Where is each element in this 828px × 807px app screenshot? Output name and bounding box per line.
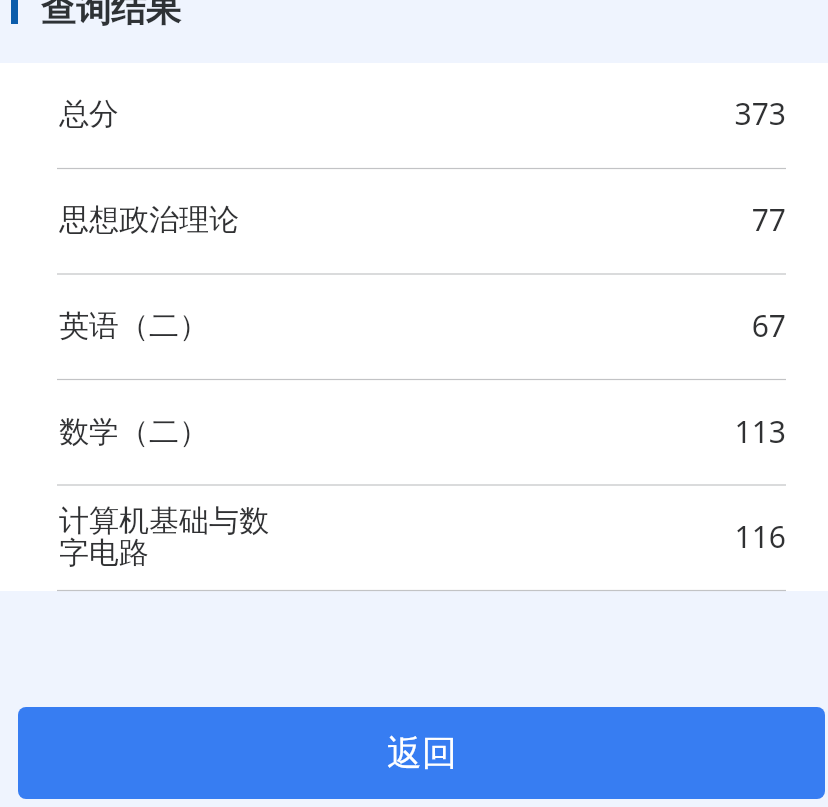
staticText: 计算机基础与数字电路 [59,502,284,572]
staticText: 113 [284,411,786,452]
staticText: 查询结果 [41,0,181,31]
staticText: 英语（二） [59,307,284,345]
staticText: 返回 [387,731,457,775]
staticText: 67 [284,305,786,346]
staticText: 思想政治理论 [59,201,284,239]
staticText: 373 [284,93,786,134]
button[interactable]: 返回 [18,707,825,799]
button[interactable]: 思想政治理论 [0,169,828,275]
staticText: 总分 [59,95,284,133]
staticText: 77 [284,199,786,240]
staticText: 数学（二） [59,413,284,451]
button[interactable]: 数学（二） [0,381,828,487]
button[interactable]: 总分 [0,63,828,169]
button[interactable]: 英语（二） [0,275,828,381]
staticText: 116 [284,516,786,557]
button[interactable]: 计算机基础与数字电路 [0,487,828,591]
